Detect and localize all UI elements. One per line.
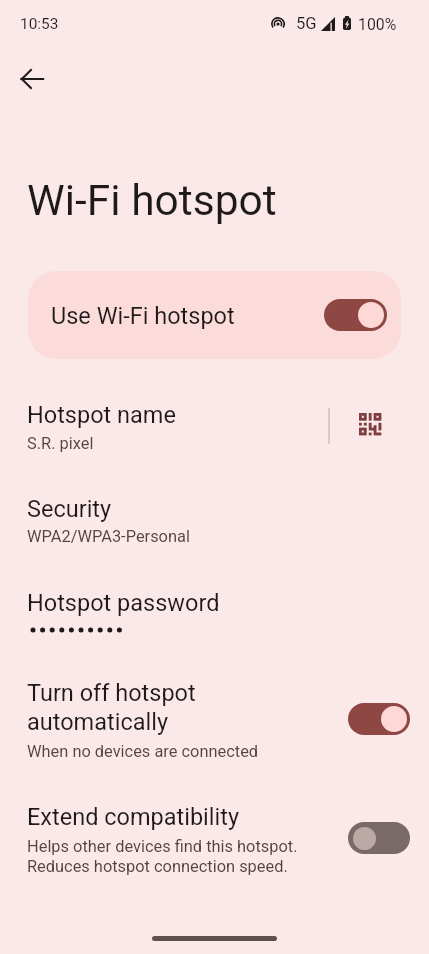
button[interactable]: Switch off (348, 822, 410, 854)
button[interactable]: Switch on (348, 703, 410, 735)
staticText: Hotspot name (27, 401, 176, 429)
button[interactable]: Use Wi-Fi hotspot (28, 271, 401, 359)
button[interactable]: Switch on (324, 299, 387, 331)
staticText: Extend compatibility (27, 803, 240, 831)
button[interactable]: Turn off hotspot automatically (0, 667, 429, 767)
staticText: WPA2/WPA3-Personal (27, 527, 190, 546)
staticText: Turn off hotspot automatically (27, 679, 196, 736)
staticText: S.R. pixel (27, 434, 94, 453)
button[interactable]: Security (0, 483, 429, 549)
staticText: 5G (296, 14, 317, 33)
button[interactable]: Share hotspot QR code (346, 400, 394, 448)
staticText: When no devices are connected (27, 742, 259, 761)
staticText: Use Wi-Fi hotspot (51, 302, 235, 330)
staticText: Helps other devices find this hotspot. R… (27, 837, 298, 876)
staticText: 100% (358, 15, 397, 34)
button[interactable]: Hotspot name (0, 389, 429, 455)
button[interactable]: Extend compatibility (0, 791, 429, 887)
staticText: Hotspot password (27, 589, 220, 617)
button[interactable]: Hotspot password (0, 577, 429, 643)
staticText: Wi-Fi hotspot (27, 176, 277, 226)
staticText: 10:53 (20, 15, 59, 33)
button[interactable]: Back (8, 55, 56, 103)
staticText: Security (27, 495, 112, 523)
